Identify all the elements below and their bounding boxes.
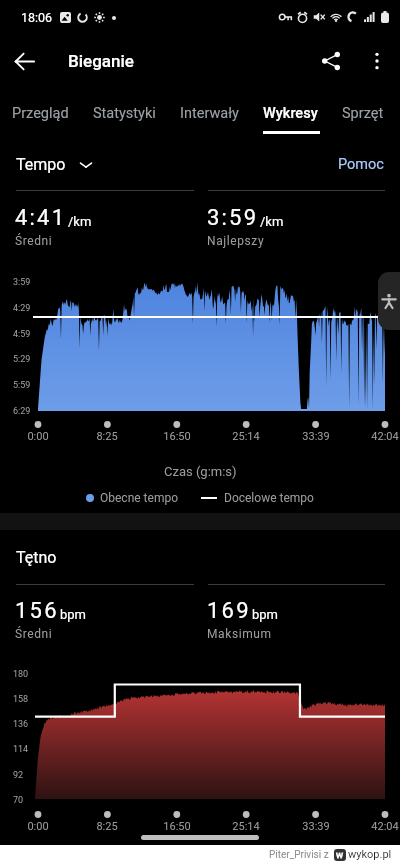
- staticText: Docelowe tempo: [224, 491, 314, 505]
- button[interactable]: Statystyki: [93, 90, 156, 136]
- button[interactable]: Pomoc: [338, 156, 384, 173]
- staticText: 156: [15, 598, 59, 624]
- button[interactable]: Tempo: [16, 155, 92, 174]
- staticText: Obecne tempo: [100, 491, 178, 505]
- button[interactable]: Przegląd: [12, 90, 69, 136]
- staticText: 33:39: [302, 430, 330, 443]
- staticText: 8:25: [96, 430, 118, 443]
- button[interactable]: More options: [354, 38, 400, 84]
- staticText: 114: [13, 744, 29, 755]
- staticText: 16:50: [163, 430, 191, 443]
- staticText: 3:59: [13, 277, 31, 288]
- staticText: 18:06: [21, 10, 53, 25]
- staticText: 4:29: [13, 303, 31, 314]
- staticText: Tętno: [16, 548, 57, 567]
- staticText: Statystyki: [93, 105, 156, 122]
- staticText: 4:41: [15, 205, 67, 231]
- staticText: /km: [68, 214, 92, 229]
- button[interactable]: Sprzęt: [342, 90, 384, 136]
- staticText: 0:00: [27, 820, 49, 833]
- staticText: 169: [207, 598, 251, 624]
- staticText: 16:50: [163, 820, 191, 833]
- button[interactable]: Share: [308, 38, 354, 84]
- staticText: 8:25: [96, 820, 118, 833]
- staticText: Średni: [15, 234, 53, 248]
- staticText: 5:29: [13, 354, 31, 365]
- button[interactable]: Interwały: [180, 90, 239, 136]
- button[interactable]: Wykresy: [263, 90, 318, 136]
- staticText: Czas (g:m:s): [164, 464, 237, 479]
- staticText: W: [336, 851, 344, 860]
- button[interactable]: Tętno: [16, 548, 57, 567]
- staticText: 92: [13, 770, 24, 781]
- staticText: Pomoc: [338, 156, 384, 173]
- staticText: 3:59: [207, 205, 259, 231]
- staticText: 6:29: [13, 406, 31, 417]
- staticText: bpm: [252, 607, 278, 622]
- staticText: wykop.pl: [348, 848, 392, 861]
- staticText: 180: [13, 669, 29, 680]
- staticText: Interwały: [180, 105, 239, 122]
- staticText: /km: [260, 214, 284, 229]
- staticText: 5:59: [13, 380, 31, 391]
- staticText: 25:14: [232, 430, 260, 443]
- staticText: 4:59: [13, 329, 31, 340]
- staticText: 70: [13, 795, 24, 806]
- staticText: Najlepszy: [207, 234, 265, 248]
- staticText: Maksimum: [207, 627, 272, 641]
- staticText: 158: [13, 694, 29, 705]
- button[interactable]: Back: [0, 37, 48, 85]
- staticText: 0:00: [27, 430, 49, 443]
- staticText: bpm: [60, 607, 86, 622]
- staticText: 33:39: [302, 820, 330, 833]
- staticText: Sprzęt: [342, 105, 384, 122]
- staticText: Piter_Privisi z: [269, 849, 329, 861]
- staticText: 42:04: [371, 820, 399, 833]
- staticText: Przegląd: [12, 105, 69, 122]
- staticText: 42:04: [371, 430, 399, 443]
- staticText: Średni: [15, 627, 53, 641]
- staticText: Wykresy: [263, 105, 318, 122]
- staticText: Tempo: [16, 155, 66, 174]
- staticText: 25:14: [232, 820, 260, 833]
- staticText: 136: [13, 719, 29, 730]
- button[interactable]: Accessibility: [378, 272, 400, 330]
- staticText: Bieganie: [68, 51, 134, 71]
